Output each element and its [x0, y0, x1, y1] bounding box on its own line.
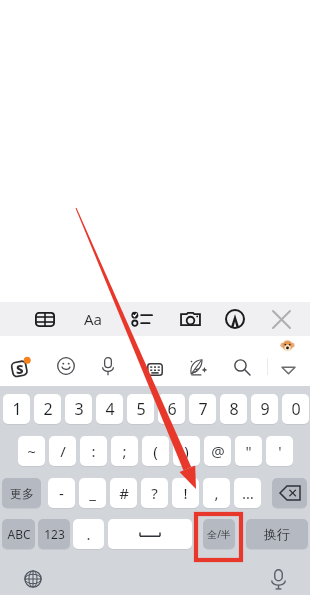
button[interactable]: .	[73, 519, 104, 549]
staticText: S	[16, 360, 24, 378]
button[interactable]: Voice input	[91, 344, 125, 388]
button[interactable]: 9	[251, 394, 278, 424]
button[interactable]: ;	[111, 436, 138, 466]
button[interactable]: Table	[33, 302, 57, 336]
staticText: 3	[74, 398, 84, 420]
button[interactable]: Aa	[76, 302, 110, 336]
staticText: :	[91, 441, 96, 461]
staticText: 123	[44, 526, 65, 542]
staticText: #	[119, 483, 129, 503]
button[interactable]: ~	[18, 436, 45, 466]
button[interactable]: Voice input	[260, 562, 296, 595]
staticText: 8	[229, 398, 239, 420]
staticText: /	[60, 441, 66, 461]
button[interactable]: Search	[225, 345, 259, 389]
staticText: Aa	[84, 309, 103, 329]
staticText: ABC	[7, 526, 31, 542]
staticText: 1	[12, 398, 22, 420]
staticText: _	[89, 483, 96, 503]
button[interactable]: '	[266, 436, 293, 466]
button[interactable]: 1	[3, 394, 30, 424]
staticText: …	[242, 483, 254, 503]
staticText: -	[59, 483, 64, 503]
button[interactable]: -	[48, 478, 75, 508]
staticText: .	[86, 524, 91, 544]
button[interactable]: 0	[282, 394, 309, 424]
button[interactable]: 5	[127, 394, 154, 424]
staticText: 5	[136, 398, 146, 420]
staticText: 0	[291, 398, 301, 420]
button[interactable]: :	[80, 436, 107, 466]
button[interactable]: )	[173, 436, 200, 466]
staticText: 4	[105, 398, 115, 420]
button[interactable]: Sogou input	[4, 346, 38, 388]
button[interactable]: 换行	[246, 519, 308, 549]
button[interactable]: Collapse keyboard	[271, 348, 305, 392]
staticText: )	[184, 441, 189, 461]
staticText: 换行	[264, 526, 290, 542]
staticText: 全/半	[207, 527, 231, 541]
staticText: @	[211, 441, 225, 461]
button[interactable]: _	[79, 478, 106, 508]
button[interactable]: !	[172, 478, 199, 508]
button[interactable]: 4	[96, 394, 123, 424]
button[interactable]: Emoji	[49, 344, 83, 388]
button[interactable]: Draw	[223, 302, 247, 336]
button[interactable]: Close	[269, 302, 293, 336]
staticText: 2	[43, 398, 53, 420]
staticText: 7	[198, 398, 208, 420]
button[interactable]: 6	[158, 394, 185, 424]
button[interactable]: Space	[108, 519, 192, 549]
button[interactable]: Keyboard layout	[138, 347, 172, 391]
button[interactable]: @	[204, 436, 231, 466]
staticText: 更多	[10, 486, 34, 501]
button[interactable]: #	[110, 478, 137, 508]
staticText: (	[153, 441, 158, 461]
button[interactable]: Camera	[176, 302, 204, 336]
button[interactable]: ?	[141, 478, 168, 508]
button[interactable]: "	[235, 436, 262, 466]
button[interactable]: /	[49, 436, 76, 466]
button[interactable]: (	[142, 436, 169, 466]
button[interactable]: Backspace	[272, 478, 307, 508]
staticText: '	[278, 441, 282, 461]
button[interactable]: 更多	[2, 478, 41, 508]
button[interactable]: 7	[189, 394, 216, 424]
staticText: 9	[260, 398, 270, 420]
button[interactable]: 123	[38, 519, 70, 549]
button[interactable]: 3	[65, 394, 92, 424]
button[interactable]: Handwriting	[181, 345, 215, 389]
button[interactable]: ,	[203, 478, 230, 508]
staticText: 6	[167, 398, 177, 420]
button[interactable]: …	[234, 478, 261, 508]
staticText: ?	[151, 483, 158, 503]
staticText: !	[183, 483, 188, 503]
button[interactable]: Checklist	[129, 302, 153, 336]
button[interactable]: 2	[34, 394, 61, 424]
staticText: ;	[122, 441, 127, 461]
staticText: "	[245, 441, 252, 461]
button[interactable]: 全/半	[203, 519, 235, 549]
button[interactable]: 8	[220, 394, 247, 424]
button[interactable]: Switch language	[15, 562, 51, 595]
staticText: ~	[27, 441, 36, 461]
button[interactable]: ABC	[2, 519, 35, 549]
staticText: ,	[214, 483, 219, 503]
